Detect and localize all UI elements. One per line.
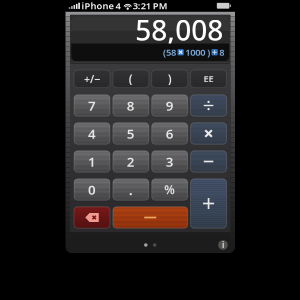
button[interactable]: 7 xyxy=(74,95,110,116)
staticText: 8 xyxy=(219,46,224,58)
staticText: iPhone 4 xyxy=(82,0,121,12)
button[interactable]: 3 xyxy=(152,151,188,172)
button[interactable]: % xyxy=(152,179,188,200)
button[interactable]: Plus xyxy=(191,179,227,228)
button[interactable]: Multiply xyxy=(191,123,227,144)
button[interactable]: 0 xyxy=(74,179,110,200)
button[interactable]: 1 xyxy=(74,151,110,172)
staticText: +/− xyxy=(84,72,100,86)
staticText: 8 xyxy=(127,97,135,114)
button[interactable]: 9 xyxy=(152,95,188,116)
staticText: % xyxy=(164,181,175,197)
staticText: i xyxy=(222,240,224,250)
button[interactable]: ( xyxy=(113,70,149,87)
button[interactable]: . xyxy=(113,179,149,200)
button[interactable]: EE xyxy=(191,70,227,87)
staticText: . xyxy=(129,180,133,199)
button[interactable]: 5 xyxy=(113,123,149,144)
button[interactable]: 2 xyxy=(113,151,149,172)
staticText: 7 xyxy=(88,97,96,114)
button[interactable]: Delete xyxy=(74,207,110,228)
staticText: 58,008 xyxy=(135,11,223,49)
button[interactable]: ) xyxy=(152,70,188,87)
staticText: 1 xyxy=(88,153,96,170)
staticText: 0 xyxy=(88,181,96,198)
staticText: ( xyxy=(129,71,133,87)
staticText: 2 xyxy=(127,153,135,170)
button[interactable]: 4 xyxy=(74,123,110,144)
button[interactable]: Minus xyxy=(191,151,227,172)
staticText: 5 xyxy=(127,125,135,142)
staticText: 1000 ) xyxy=(185,46,210,58)
staticText: EE xyxy=(204,73,214,85)
staticText: 6 xyxy=(166,125,174,142)
staticText: (58 xyxy=(163,46,176,58)
button[interactable]: 6 xyxy=(152,123,188,144)
button[interactable]: Divide xyxy=(191,95,227,116)
button[interactable]: Equals xyxy=(113,207,188,228)
staticText: 9 xyxy=(166,97,174,114)
staticText: 4 xyxy=(88,125,96,142)
staticText: ) xyxy=(168,71,172,87)
button[interactable]: Info xyxy=(216,238,230,252)
button[interactable]: 8 xyxy=(113,95,149,116)
button[interactable]: +/− xyxy=(74,70,110,87)
staticText: 3 xyxy=(166,153,174,170)
staticText: 3:21 PM xyxy=(133,0,168,12)
